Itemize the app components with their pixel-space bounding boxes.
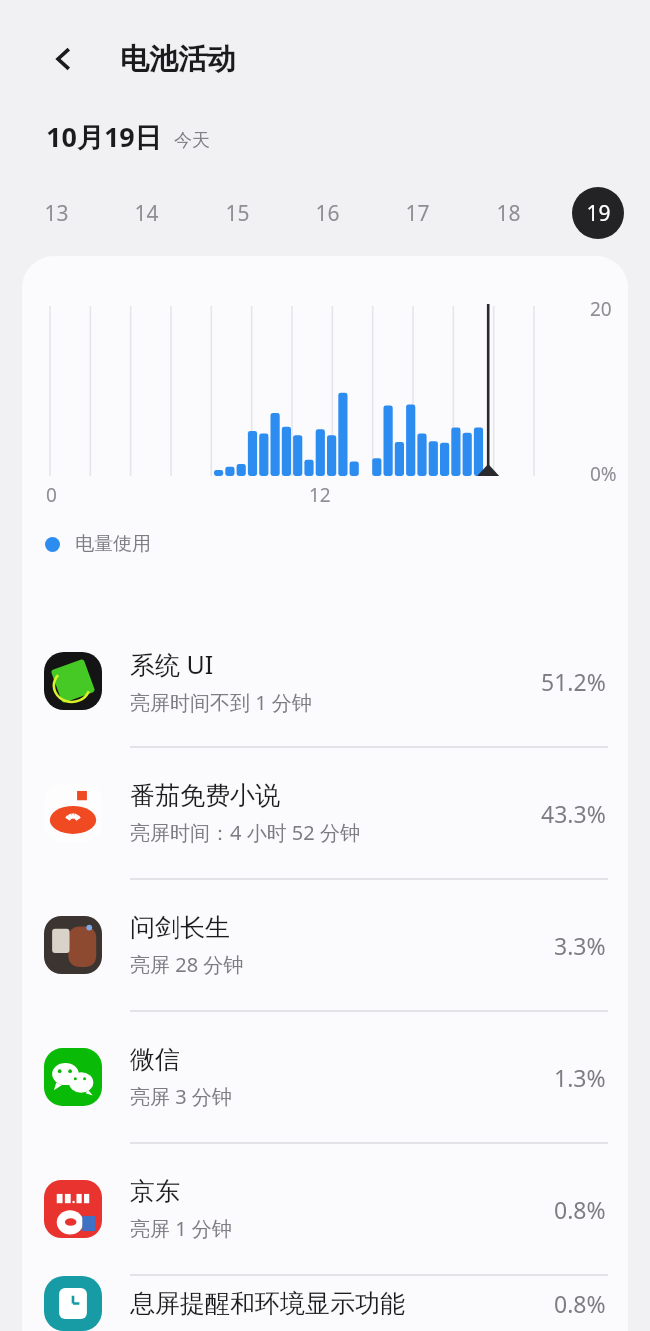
button[interactable]: 问剑长生 [22, 880, 628, 1010]
staticText: 系统 UI [130, 647, 214, 681]
button[interactable]: 微信 [22, 1012, 628, 1142]
staticText: 番茄免费小说 [130, 780, 280, 811]
staticText: 京东 [130, 1176, 180, 1207]
staticText: 20 [590, 296, 612, 322]
staticText: 息屏提醒和环境显示功能 [130, 1288, 405, 1319]
staticText: 0% [590, 461, 617, 487]
staticText: 18 [496, 199, 521, 228]
button[interactable]: 13 [30, 187, 82, 239]
staticText: 今天 [174, 129, 210, 152]
button[interactable]: 19 [572, 187, 624, 239]
staticText: 0.8% [554, 1288, 606, 1319]
staticText: 微信 [130, 1044, 180, 1075]
button[interactable]: 息屏提醒和环境显示功能 [22, 1276, 628, 1331]
staticText: 10月19日 [46, 118, 162, 155]
staticText: 13 [44, 199, 69, 228]
staticText: 3.3% [554, 930, 606, 961]
staticText: 17 [405, 199, 430, 228]
button[interactable]: 18 [482, 187, 534, 239]
staticText: 16 [315, 199, 340, 228]
staticText: 电量使用 [75, 532, 151, 556]
staticText: 问剑长生 [130, 912, 230, 943]
staticText: 19 [586, 199, 611, 228]
button[interactable]: Back [38, 33, 90, 85]
staticText: 0.8% [554, 1194, 606, 1225]
staticText: 亮屏时间不到 1 分钟 [130, 689, 312, 716]
button[interactable]: 15 [211, 187, 263, 239]
staticText: 0 [46, 482, 57, 508]
button[interactable]: 系统 UI [22, 616, 628, 746]
staticText: 43.3% [541, 798, 606, 829]
button[interactable]: 番茄免费小说 [22, 748, 628, 878]
button[interactable]: 京东 [22, 1144, 628, 1274]
staticText: 1.3% [554, 1062, 606, 1093]
staticText: 电池活动 [120, 41, 236, 78]
button[interactable]: 16 [301, 187, 353, 239]
staticText: 亮屏 28 分钟 [130, 951, 244, 978]
button[interactable]: 17 [391, 187, 443, 239]
staticText: 15 [225, 199, 250, 228]
staticText: 51.2% [541, 666, 606, 697]
staticText: 亮屏时间：4 小时 52 分钟 [130, 819, 360, 846]
staticText: 14 [134, 199, 159, 228]
staticText: 亮屏 1 分钟 [130, 1215, 232, 1242]
button[interactable]: 14 [120, 187, 172, 239]
staticText: 12 [309, 482, 331, 508]
staticText: 亮屏 3 分钟 [130, 1083, 232, 1110]
